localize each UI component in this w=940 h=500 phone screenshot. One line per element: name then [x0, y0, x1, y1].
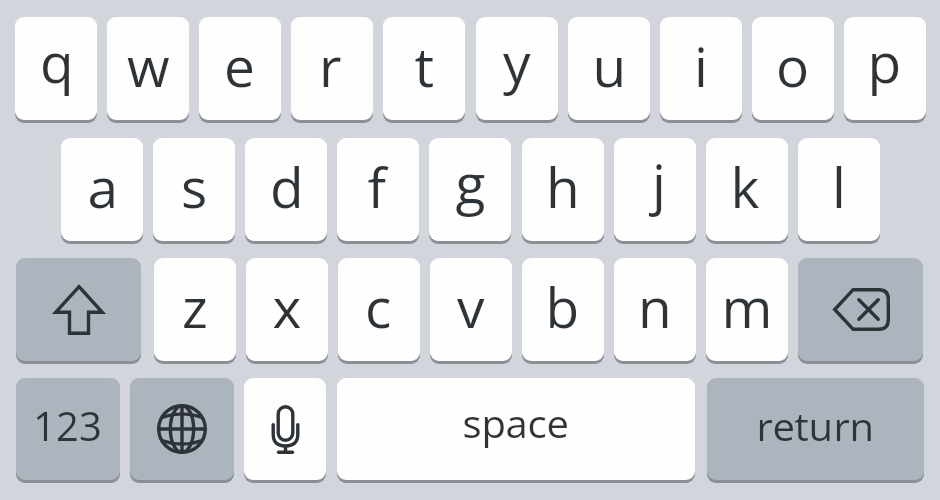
button[interactable]: [798, 138, 880, 241]
button[interactable]: [337, 138, 419, 241]
button[interactable]: [706, 138, 788, 241]
button[interactable]: [614, 138, 696, 241]
button[interactable]: [476, 17, 558, 120]
button[interactable]: [153, 138, 235, 241]
button[interactable]: [706, 258, 788, 361]
button[interactable]: [383, 17, 465, 120]
button[interactable]: [245, 138, 327, 241]
button[interactable]: [614, 258, 696, 361]
button[interactable]: Switch language: [130, 378, 234, 480]
button[interactable]: Voice input: [244, 378, 326, 480]
button[interactable]: [246, 258, 328, 361]
button[interactable]: [107, 17, 189, 120]
button[interactable]: [154, 258, 236, 361]
button[interactable]: Shift: [16, 258, 141, 361]
button[interactable]: [522, 138, 604, 241]
button[interactable]: [660, 17, 742, 120]
button[interactable]: [291, 17, 373, 120]
button[interactable]: [337, 378, 695, 480]
button[interactable]: [430, 258, 512, 361]
button[interactable]: [61, 138, 143, 241]
button[interactable]: [522, 258, 604, 361]
button[interactable]: [16, 378, 120, 480]
button[interactable]: [844, 17, 926, 120]
button[interactable]: [429, 138, 511, 241]
button[interactable]: [338, 258, 420, 361]
button[interactable]: Backspace: [798, 258, 923, 361]
button[interactable]: [199, 17, 281, 120]
button[interactable]: [752, 17, 834, 120]
button[interactable]: [15, 17, 97, 120]
button[interactable]: [568, 17, 650, 120]
button[interactable]: [707, 378, 924, 480]
